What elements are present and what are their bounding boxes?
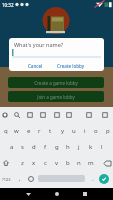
button[interactable]: Keyboard tool [101,111,109,119]
button[interactable]: Home [51,188,63,200]
staticText: 10:32 [2,2,14,8]
staticText: Create a game lobby [34,80,78,86]
button[interactable]: Create lobby [54,61,88,71]
staticText: z [21,159,24,167]
button[interactable]: ?123 [0,171,13,187]
button[interactable]: a [6,139,17,155]
staticText: o [94,127,98,135]
button[interactable]: Keyboard tool [53,111,61,119]
button[interactable]: Keyboard tool [26,111,34,119]
button[interactable]: Create a game lobby [8,77,104,88]
button[interactable]: c [40,155,51,171]
staticText: l [101,143,103,151]
button[interactable]: j [73,139,84,155]
button[interactable]: v [51,155,62,171]
staticText: f [44,143,47,151]
button[interactable]: Backspace [102,155,113,171]
button[interactable]: Back [22,188,34,200]
staticText: j [78,143,80,151]
button[interactable]: Keyboard tool [65,111,73,119]
button[interactable]: g [51,139,62,155]
staticText: r [38,127,41,135]
staticText: u [72,127,76,135]
button[interactable]: Enter [99,174,109,184]
button[interactable]: w [11,123,22,139]
staticText: , [19,175,21,183]
staticText: h [66,143,70,151]
button[interactable]: Cancel [25,61,46,71]
button[interactable]: e [23,123,34,139]
staticText: Join a game lobby [37,94,75,100]
button[interactable]: s [17,139,28,155]
staticText: . [92,175,94,183]
button[interactable]: q [0,123,11,139]
button[interactable]: Keyboard tool [1,111,9,119]
staticText: ?123 [2,177,11,182]
staticText: a [10,143,14,151]
button[interactable]: r [34,123,45,139]
button[interactable]: Join a game lobby [8,91,104,102]
staticText: s [21,143,24,151]
button[interactable]: u [68,123,79,139]
staticText: q [4,127,8,135]
button[interactable]: y [57,123,68,139]
button[interactable]: l [96,139,107,155]
button[interactable]: k [85,139,96,155]
button[interactable]: d [28,139,39,155]
button[interactable]: b [62,155,73,171]
button[interactable]: x [28,155,39,171]
staticText: e [27,127,31,135]
staticText: What's your name? [14,41,64,48]
button[interactable]: p [102,123,113,139]
button[interactable]: f [40,139,51,155]
staticText: y [61,127,65,135]
staticText: g [55,143,59,151]
button[interactable]: Shift [0,155,11,171]
staticText: Create lobby [57,63,85,69]
button[interactable]: i [79,123,90,139]
button[interactable]: t [45,123,56,139]
button[interactable]: n [73,155,84,171]
staticText: d [32,143,36,151]
button[interactable]: o [90,123,101,139]
button[interactable]: Keyboard tool [85,111,93,119]
button[interactable]: h [62,139,73,155]
staticText: m [88,159,94,167]
staticText: p [106,127,110,135]
staticText: n [77,159,81,167]
button[interactable]: m [85,155,96,171]
button[interactable]: z [17,155,28,171]
button[interactable]: , [14,171,25,187]
staticText: t [49,127,52,135]
button[interactable]: Recents [79,188,91,200]
staticText: Cancel [28,63,43,69]
button[interactable]: . [87,171,98,187]
staticText: x [32,159,36,167]
staticText: w [14,127,19,135]
button[interactable]: Emoji [25,171,36,187]
staticText: c [44,159,47,167]
button[interactable]: Keyboard tool [13,111,21,119]
button[interactable]: Keyboard tool [39,111,47,119]
staticText: b [66,159,70,167]
staticText: v [55,159,59,167]
staticText: k [89,143,93,151]
staticText: i [84,127,86,135]
